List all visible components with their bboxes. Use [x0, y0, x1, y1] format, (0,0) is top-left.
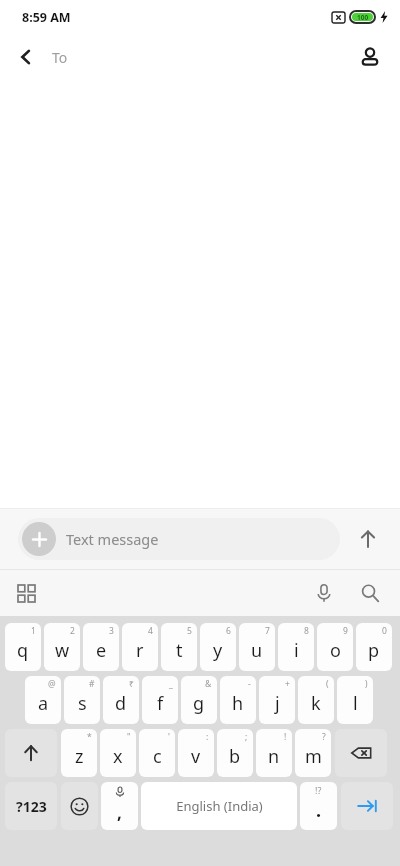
staticText: g: [193, 691, 205, 716]
staticText: t: [176, 638, 183, 663]
button[interactable]: Toolbar: [8, 575, 44, 611]
button[interactable]: Comma / voice: [101, 782, 138, 830]
button[interactable]: Key: [335, 729, 387, 777]
staticText: ?: [322, 731, 326, 743]
button[interactable]: Key: [5, 782, 57, 830]
button[interactable]: 2: [44, 623, 80, 671]
button[interactable]: Send: [348, 519, 388, 559]
button[interactable]: Key: [5, 729, 57, 777]
button[interactable]: @: [25, 676, 61, 724]
staticText: p: [368, 638, 380, 663]
staticText: f: [157, 691, 164, 716]
staticText: v: [191, 744, 201, 769]
button[interactable]: Voice input: [304, 573, 344, 613]
button[interactable]: 4: [122, 623, 158, 671]
staticText: i: [294, 638, 299, 663]
button[interactable]: 0: [356, 623, 392, 671]
staticText: a: [38, 691, 49, 716]
button[interactable]: 1: [5, 623, 41, 671]
staticText: ,: [117, 801, 122, 824]
button[interactable]: Key: [341, 782, 393, 830]
button[interactable]: 8: [278, 623, 314, 671]
staticText: 5: [187, 625, 192, 637]
staticText: 6: [226, 625, 231, 637]
staticText: 8: [304, 625, 309, 637]
button[interactable]: Back: [6, 37, 46, 77]
button[interactable]: English (India): [141, 782, 297, 830]
staticText: h: [232, 691, 244, 716]
button[interactable]: Add contact: [348, 35, 392, 79]
button[interactable]: (: [298, 676, 334, 724]
button[interactable]: 5: [161, 623, 197, 671]
staticText: c: [153, 744, 162, 769]
staticText: e: [96, 638, 107, 663]
button[interactable]: Key: [61, 782, 98, 830]
button[interactable]: Search: [350, 573, 390, 613]
staticText: w: [55, 638, 70, 663]
button[interactable]: 9: [317, 623, 353, 671]
button[interactable]: Period: [300, 782, 337, 830]
button[interactable]: #: [64, 676, 100, 724]
staticText: 7: [265, 625, 270, 637]
staticText: 1: [31, 625, 36, 637]
staticText: Text message: [66, 529, 159, 549]
staticText: n: [268, 744, 280, 769]
staticText: q: [17, 638, 29, 663]
staticText: y: [213, 638, 223, 663]
button[interactable]: 7: [239, 623, 275, 671]
staticText: #: [89, 678, 95, 690]
staticText: b: [229, 744, 241, 769]
staticText: ;: [245, 731, 248, 743]
staticText: _: [169, 678, 173, 690]
staticText: 4: [148, 625, 153, 637]
staticText: To: [52, 48, 68, 67]
staticText: o: [330, 638, 341, 663]
staticText: r: [136, 638, 144, 663]
staticText: x: [113, 744, 123, 769]
button[interactable]: ?: [295, 729, 331, 777]
staticText: @: [48, 678, 56, 690]
staticText: ): [365, 678, 368, 690]
staticText: 2: [70, 625, 75, 637]
staticText: m: [305, 744, 322, 769]
staticText: j: [275, 691, 280, 716]
staticText: s: [78, 691, 87, 716]
button[interactable]: *: [61, 729, 97, 777]
staticText: ₹: [129, 678, 134, 690]
button[interactable]: ': [139, 729, 175, 777]
staticText: u: [251, 638, 263, 663]
staticText: (: [326, 678, 329, 690]
button[interactable]: +: [259, 676, 295, 724]
staticText: 3: [109, 625, 114, 637]
button[interactable]: _: [142, 676, 178, 724]
button[interactable]: -: [220, 676, 256, 724]
button[interactable]: ₹: [103, 676, 139, 724]
staticText: !?: [315, 784, 322, 796]
staticText: :: [206, 731, 209, 743]
staticText: 8:59 AM: [22, 9, 71, 26]
button[interactable]: &: [181, 676, 217, 724]
staticText: ?123: [16, 797, 47, 816]
staticText: k: [311, 691, 321, 716]
button[interactable]: 3: [83, 623, 119, 671]
staticText: 100: [357, 13, 369, 22]
staticText: &: [205, 678, 212, 690]
staticText: d: [115, 691, 127, 716]
button[interactable]: :: [178, 729, 214, 777]
button[interactable]: ): [337, 676, 373, 724]
staticText: l: [353, 691, 358, 716]
button[interactable]: 6: [200, 623, 236, 671]
staticText: -: [248, 678, 251, 690]
button[interactable]: ;: [217, 729, 253, 777]
staticText: .: [316, 798, 322, 823]
staticText: *: [87, 731, 92, 743]
staticText: z: [75, 744, 84, 769]
button[interactable]: Text message: [18, 518, 340, 560]
button[interactable]: !: [256, 729, 292, 777]
staticText: !: [284, 731, 287, 743]
staticText: +: [285, 678, 290, 690]
staticText: 0: [382, 625, 387, 637]
staticText: 9: [343, 625, 348, 637]
staticText: ": [127, 731, 131, 743]
button[interactable]: ": [100, 729, 136, 777]
